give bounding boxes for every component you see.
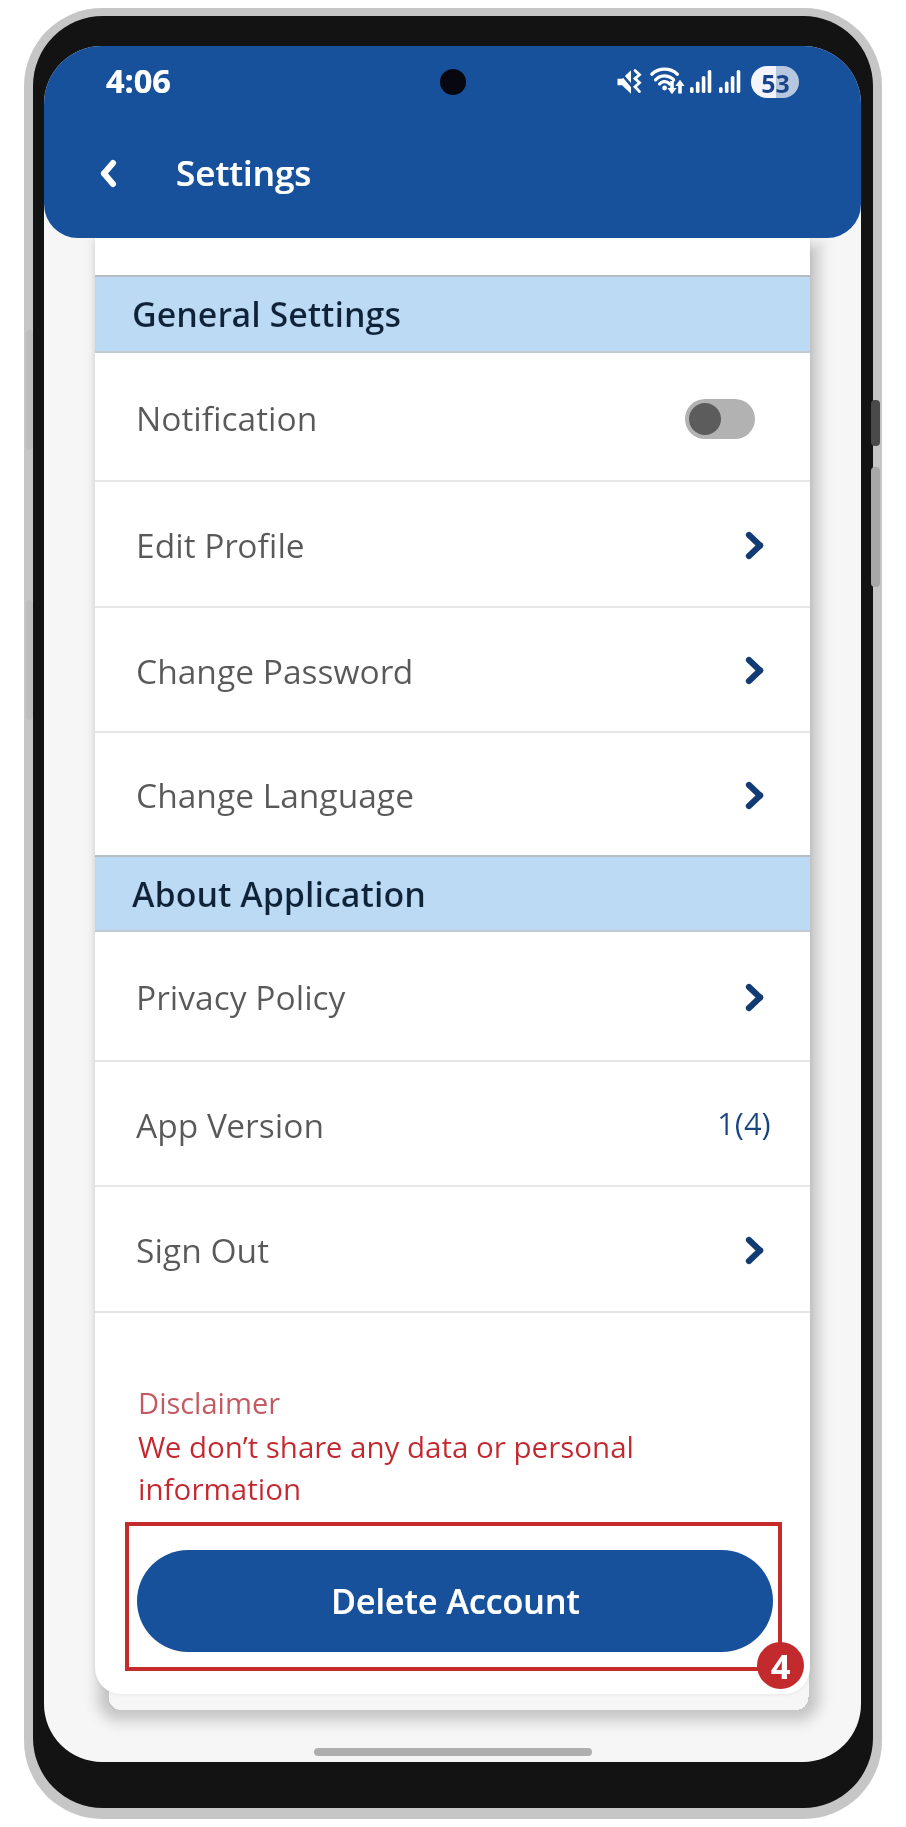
button[interactable]: App Version xyxy=(95,1062,810,1185)
staticText: Change Language xyxy=(136,772,415,818)
staticText: We don’t share any data or personal info… xyxy=(138,1426,698,1509)
staticText: Change Password xyxy=(136,648,414,694)
button[interactable]: Notification xyxy=(95,353,810,480)
staticText: Edit Profile xyxy=(136,522,305,568)
button[interactable]: Change Password xyxy=(95,608,810,731)
button[interactable]: Edit Profile xyxy=(95,482,810,606)
button[interactable]: Delete Account xyxy=(137,1550,773,1652)
staticText: 1(4) xyxy=(717,1102,771,1144)
staticText: Settings xyxy=(176,149,312,197)
staticText: Disclaimer xyxy=(138,1383,280,1422)
button[interactable]: Back xyxy=(83,148,133,198)
button[interactable]: Notification toggle xyxy=(685,399,755,439)
staticText: 53 xyxy=(761,66,790,98)
staticText: Delete Account xyxy=(331,1578,580,1624)
staticText: 4 xyxy=(771,1643,791,1689)
staticText: General Settings xyxy=(132,291,401,337)
staticText: 4:06 xyxy=(106,58,171,102)
button[interactable]: Privacy Policy xyxy=(95,932,810,1060)
staticText: Sign Out xyxy=(136,1227,269,1273)
button[interactable]: Change Language xyxy=(95,733,810,855)
staticText: App Version xyxy=(136,1102,324,1148)
staticText: Notification xyxy=(136,395,318,441)
staticText: About Application xyxy=(132,871,426,917)
staticText: Privacy Policy xyxy=(136,974,346,1020)
button[interactable]: Sign Out xyxy=(95,1187,810,1311)
